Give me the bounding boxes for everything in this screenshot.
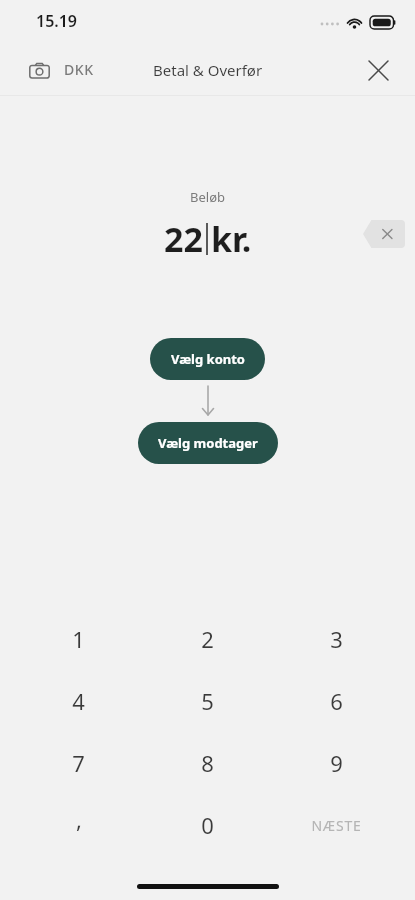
button[interactable]: 1: [14, 608, 143, 670]
button[interactable]: 7: [14, 732, 143, 794]
staticText: 5: [201, 686, 214, 716]
button[interactable]: ,: [14, 794, 143, 856]
staticText: Betal & Overfør: [153, 60, 263, 80]
button[interactable]: Backspace: [363, 220, 405, 248]
staticText: 9: [330, 748, 343, 778]
button[interactable]: 5: [143, 670, 272, 732]
staticText: NÆSTE: [311, 816, 362, 835]
button[interactable]: Close: [361, 53, 395, 87]
button[interactable]: 2: [143, 608, 272, 670]
button[interactable]: Scan with camera: [22, 53, 56, 87]
staticText: Beløb: [190, 188, 225, 206]
button[interactable]: NÆSTE: [272, 794, 401, 856]
button[interactable]: Vælg konto: [150, 338, 265, 380]
staticText: 6: [330, 686, 343, 716]
staticText: 4: [72, 686, 85, 716]
staticText: 3: [330, 624, 343, 654]
staticText: kr.: [211, 216, 252, 262]
staticText: 8: [201, 748, 214, 778]
staticText: 1: [72, 624, 85, 654]
button[interactable]: 4: [14, 670, 143, 732]
button[interactable]: 0: [143, 794, 272, 856]
staticText: ,: [76, 804, 82, 834]
staticText: 22: [164, 216, 203, 262]
staticText: 0: [201, 810, 214, 840]
button[interactable]: Vælg modtager: [138, 422, 278, 464]
staticText: 2: [201, 624, 214, 654]
button[interactable]: 3: [272, 608, 401, 670]
staticText: DKK: [64, 60, 94, 79]
staticText: 15.19: [36, 10, 78, 32]
button[interactable]: 8: [143, 732, 272, 794]
staticText: 7: [72, 748, 85, 778]
button[interactable]: 9: [272, 732, 401, 794]
staticText: Vælg modtager: [158, 434, 258, 452]
button[interactable]: 6: [272, 670, 401, 732]
button[interactable]: DKK: [64, 60, 94, 79]
staticText: Vælg konto: [171, 350, 245, 368]
